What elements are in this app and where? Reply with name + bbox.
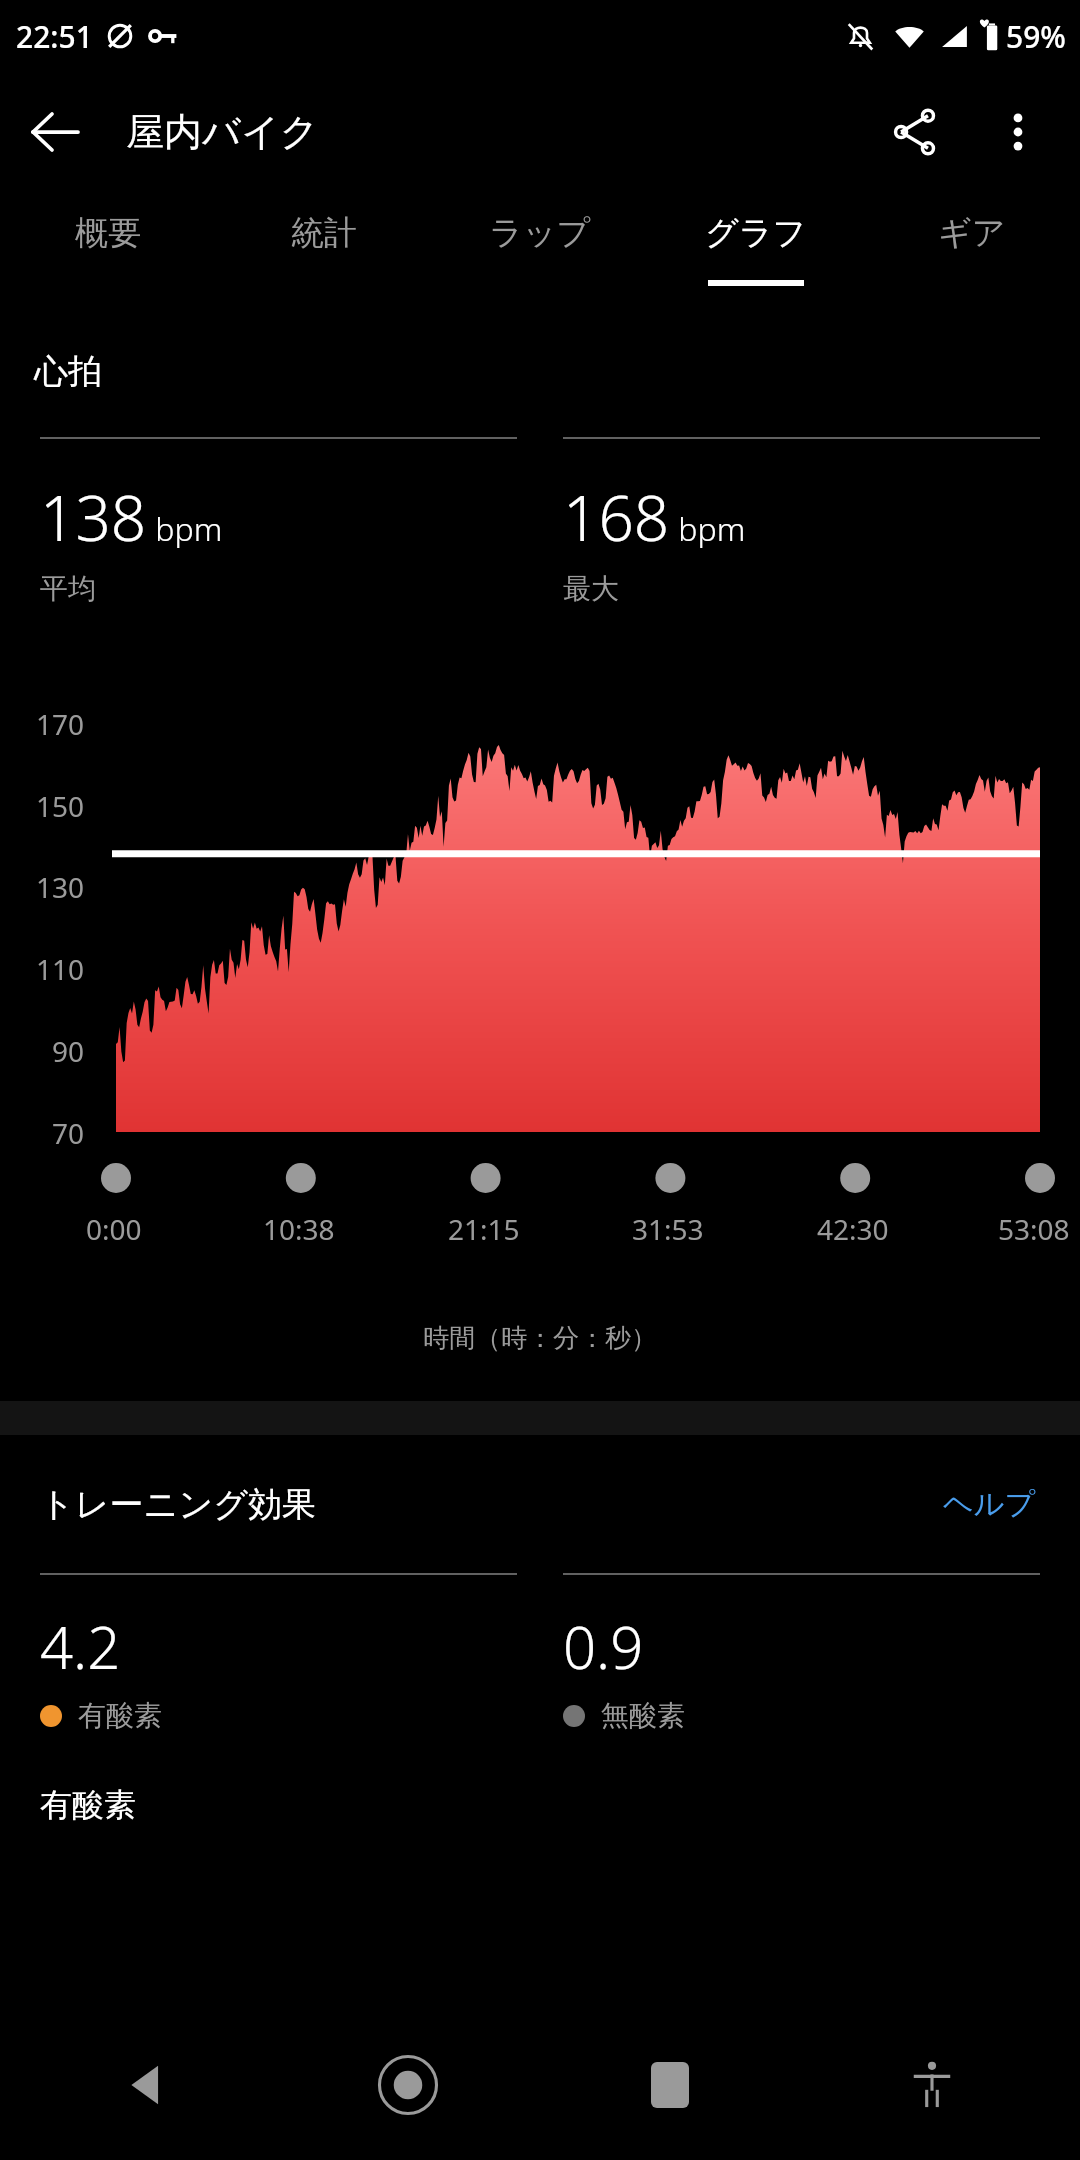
- staticText: 170: [36, 705, 85, 743]
- button[interactable]: 共有: [860, 77, 970, 187]
- staticText: 22:51: [16, 16, 93, 57]
- staticText: 21:15: [448, 1210, 520, 1248]
- staticText: 59%: [1006, 16, 1066, 57]
- button[interactable]: ユーザー補助: [872, 2025, 992, 2145]
- button[interactable]: ヘルプ: [939, 1481, 1040, 1527]
- staticText: 42:30: [817, 1210, 889, 1248]
- staticText: bpm: [147, 507, 223, 551]
- staticText: bpm: [670, 507, 746, 551]
- staticText: トレーニング効果: [40, 1483, 316, 1526]
- staticText: 31:53: [632, 1210, 704, 1248]
- staticText: ラップ: [489, 212, 591, 254]
- button[interactable]: ラップ: [432, 192, 648, 312]
- staticText: 最大: [563, 571, 619, 606]
- button[interactable]: 最近のアプリ: [610, 2025, 730, 2145]
- staticText: ヘルプ: [943, 1485, 1036, 1523]
- button[interactable]: ホーム: [348, 2025, 468, 2145]
- staticText: 0:00: [86, 1210, 142, 1248]
- button[interactable]: ギア: [864, 192, 1080, 312]
- staticText: 屋内バイク: [126, 108, 319, 156]
- staticText: 90: [52, 1032, 85, 1070]
- button[interactable]: 戻る: [0, 77, 110, 187]
- staticText: 統計: [291, 212, 357, 254]
- staticText: 4.2: [40, 1607, 121, 1686]
- staticText: 平均: [40, 571, 96, 606]
- staticText: ギア: [938, 212, 1006, 254]
- button[interactable]: その他のオプション: [970, 77, 1066, 187]
- staticText: 138: [40, 475, 147, 559]
- staticText: 有酸素: [78, 1698, 162, 1733]
- staticText: 110: [36, 950, 85, 988]
- button[interactable]: 戻る: [87, 2025, 207, 2145]
- staticText: 有酸素: [40, 1785, 136, 1825]
- button[interactable]: 概要: [0, 192, 216, 312]
- button[interactable]: グラフ: [648, 192, 864, 312]
- staticText: 概要: [75, 212, 141, 254]
- staticText: 心拍: [34, 350, 102, 393]
- staticText: 無酸素: [601, 1698, 685, 1733]
- staticText: 130: [36, 868, 85, 906]
- staticText: 10:38: [263, 1210, 335, 1248]
- staticText: 168: [563, 475, 670, 559]
- button[interactable]: 統計: [216, 192, 432, 312]
- staticText: 時間（時：分：秒）: [0, 1322, 1080, 1355]
- staticText: グラフ: [705, 212, 807, 254]
- staticText: 150: [36, 787, 85, 825]
- staticText: 0.9: [563, 1607, 644, 1686]
- staticText: 53:08: [998, 1210, 1070, 1248]
- staticText: 70: [52, 1114, 85, 1152]
